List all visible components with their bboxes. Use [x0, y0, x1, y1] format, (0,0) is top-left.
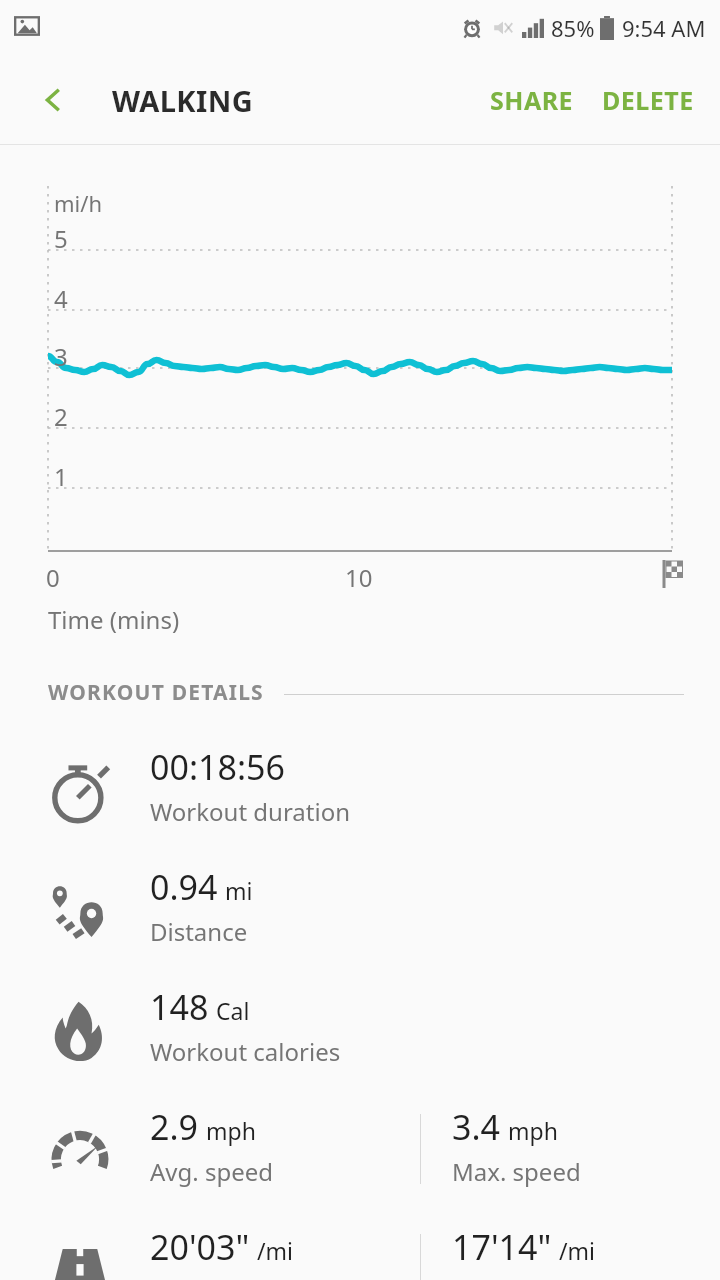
- staticText: SHARE: [490, 83, 574, 117]
- staticText: /mi: [559, 1235, 595, 1266]
- staticText: 2: [54, 400, 68, 433]
- staticText: 17'14": [452, 1224, 552, 1270]
- staticText: 0: [46, 561, 60, 594]
- staticText: Avg. speed: [150, 1155, 274, 1188]
- button[interactable]: SHARE: [476, 69, 588, 131]
- staticText: 0.94: [150, 864, 218, 910]
- staticText: 148: [150, 984, 209, 1030]
- button[interactable]: DELETE: [588, 69, 720, 131]
- staticText: 5: [54, 222, 68, 255]
- staticText: 3.4: [452, 1104, 501, 1150]
- button[interactable]: 3.4: [452, 1104, 702, 1188]
- staticText: 9:54 AM: [622, 13, 706, 43]
- staticText: mi: [225, 875, 253, 906]
- staticText: Max. speed: [452, 1155, 581, 1188]
- staticText: mi/h: [54, 188, 103, 218]
- staticText: 2.9: [150, 1104, 199, 1150]
- staticText: 4: [54, 282, 68, 315]
- staticText: Cal: [216, 995, 250, 1026]
- staticText: DELETE: [602, 83, 694, 117]
- staticText: Time (mins): [48, 603, 180, 636]
- button[interactable]: Back: [26, 72, 82, 128]
- staticText: 1: [54, 460, 68, 493]
- staticText: /mi: [257, 1235, 293, 1266]
- staticText: 10: [345, 561, 373, 594]
- staticText: 00:18:56: [150, 744, 285, 790]
- staticText: WALKING: [112, 81, 254, 120]
- button[interactable]: 2.9: [150, 1104, 410, 1188]
- button[interactable]: 20'03": [150, 1224, 410, 1280]
- staticText: Workout calories: [150, 1035, 341, 1068]
- staticText: Distance: [150, 915, 248, 948]
- staticText: Workout duration: [150, 795, 351, 828]
- button[interactable]: 148: [0, 982, 720, 1094]
- button[interactable]: 17'14": [452, 1224, 702, 1280]
- button[interactable]: 0.94: [0, 862, 720, 974]
- staticText: 85%: [551, 13, 595, 43]
- staticText: WORKOUT DETAILS: [48, 678, 264, 707]
- staticText: mph: [508, 1115, 558, 1146]
- staticText: mph: [206, 1115, 256, 1146]
- staticText: 3: [54, 340, 68, 373]
- staticText: 20'03": [150, 1224, 250, 1270]
- button[interactable]: 00:18:56: [0, 742, 720, 854]
